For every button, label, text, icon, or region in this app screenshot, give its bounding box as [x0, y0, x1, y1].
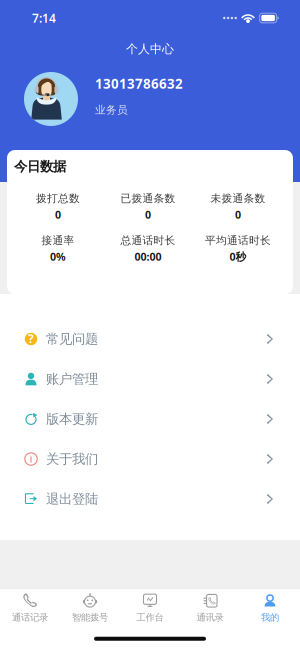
- button[interactable]: 退出登陆: [0, 479, 300, 519]
- staticText: 通讯录: [196, 612, 223, 623]
- button[interactable]: 智能拨号: [60, 589, 120, 629]
- staticText: 个人中心: [126, 42, 174, 56]
- staticText: 平均通话时长: [205, 234, 271, 247]
- staticText: 版本更新: [46, 411, 98, 427]
- staticText: 已拨通条数: [120, 192, 175, 205]
- staticText: 常见问题: [46, 331, 98, 347]
- staticText: 13013786632: [95, 75, 183, 92]
- button[interactable]: 关于我们: [0, 439, 300, 479]
- staticText: 接通率: [41, 234, 74, 247]
- button[interactable]: 通话记录: [0, 589, 60, 629]
- staticText: 00:00: [134, 249, 161, 264]
- staticText: 关于我们: [46, 451, 98, 467]
- staticText: 工作台: [136, 612, 163, 623]
- staticText: 我的: [261, 612, 279, 623]
- button[interactable]: 我的: [240, 589, 300, 629]
- staticText: 总通话时长: [120, 234, 175, 247]
- staticText: 0%: [50, 249, 66, 264]
- staticText: 拨打总数: [36, 192, 80, 205]
- staticText: 账户管理: [46, 371, 98, 387]
- staticText: 智能拨号: [72, 612, 108, 623]
- staticText: 0: [55, 207, 61, 222]
- staticText: 0: [235, 207, 241, 222]
- staticText: 业务员: [95, 103, 128, 116]
- staticText: ?: [28, 330, 34, 346]
- button[interactable]: ?: [0, 319, 300, 359]
- button[interactable]: 版本更新: [0, 399, 300, 439]
- button[interactable]: 个人中心: [0, 38, 300, 60]
- staticText: 0: [145, 207, 151, 222]
- button[interactable]: 工作台: [120, 589, 180, 629]
- staticText: 7:14: [32, 10, 56, 26]
- button[interactable]: 通讯录: [180, 589, 240, 629]
- staticText: 通话记录: [12, 612, 48, 623]
- staticText: 退出登陆: [46, 491, 98, 507]
- button[interactable]: 账户管理: [0, 359, 300, 399]
- staticText: 0秒: [229, 249, 246, 264]
- staticText: 未拨通条数: [210, 192, 265, 205]
- staticText: 今日数据: [14, 158, 66, 175]
